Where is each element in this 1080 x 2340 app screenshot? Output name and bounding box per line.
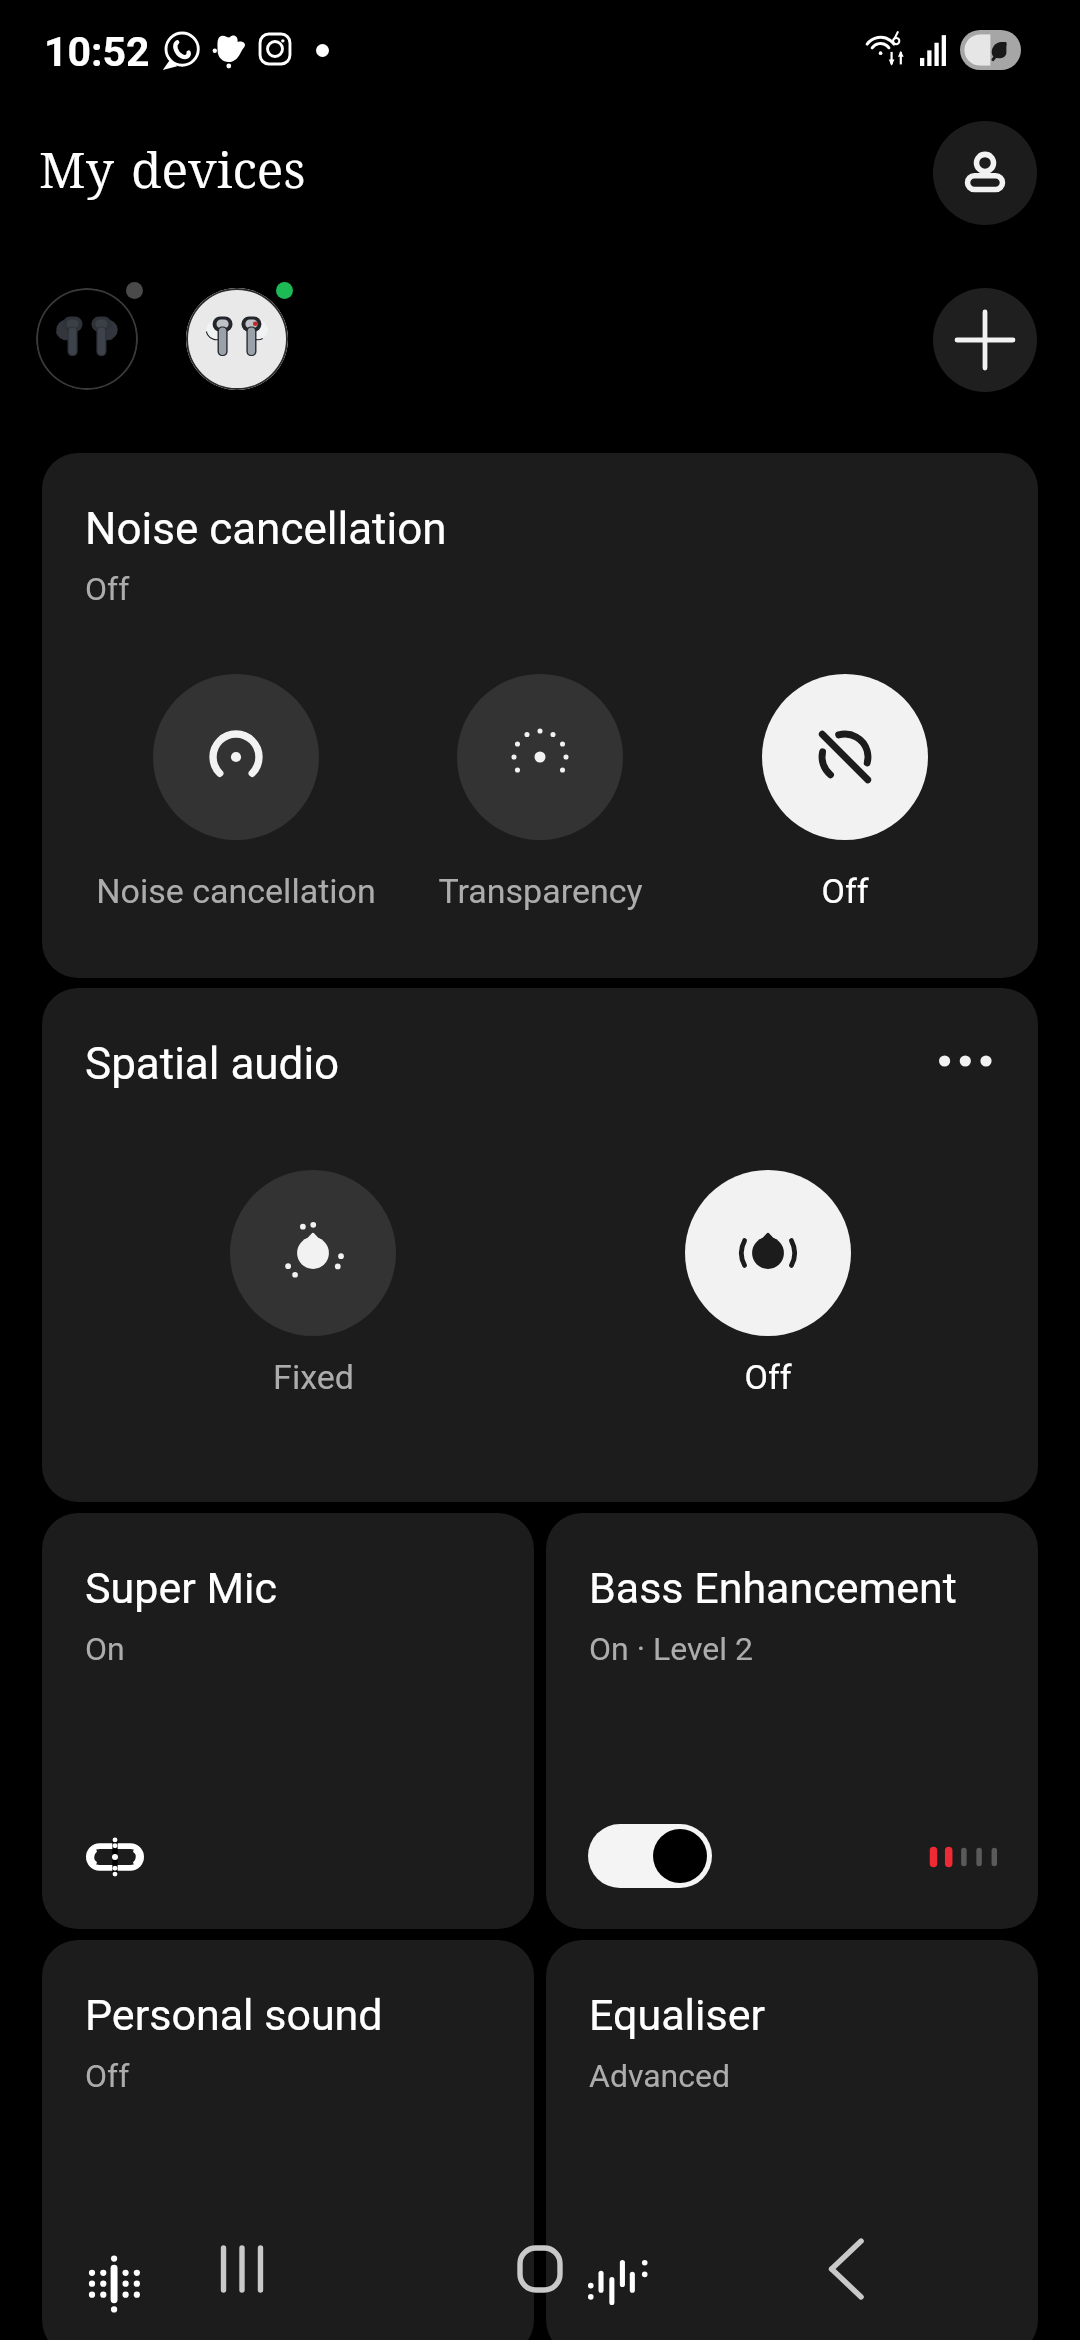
button[interactable]: Off	[685, 674, 1005, 911]
staticText: Bass Enhancement	[589, 1563, 957, 1613]
staticText: Noise cancellation	[96, 871, 376, 911]
staticText: On	[85, 1630, 125, 1668]
button[interactable]: Home	[480, 2209, 600, 2329]
button[interactable]: Connected earbuds	[186, 288, 288, 390]
button[interactable]: Transparency	[380, 674, 700, 911]
staticText: Personal sound	[85, 1990, 383, 2040]
staticText: Transparency	[438, 871, 643, 911]
button[interactable]: Account	[933, 121, 1037, 225]
button[interactable]: Off	[608, 1170, 928, 1397]
staticText: devices	[131, 130, 306, 202]
staticText: Off	[85, 2057, 130, 2095]
button[interactable]: Noise cancellation	[42, 453, 1038, 978]
button[interactable]: Recents	[182, 2209, 302, 2329]
button[interactable]: Fixed	[153, 1170, 473, 1397]
staticText: Equaliser	[589, 1990, 766, 2040]
button[interactable]: Equaliser	[546, 1940, 1038, 2340]
button[interactable]: Bass Enhancement	[546, 1513, 1038, 1929]
button[interactable]: Personal sound	[42, 1940, 534, 2340]
staticText: Spatial audio	[85, 1038, 340, 1090]
staticText: Off	[821, 871, 869, 911]
button[interactable]: Earbuds	[36, 288, 138, 390]
button[interactable]: Spatial audio	[42, 988, 1038, 1502]
button[interactable]: Bass enhancement toggle	[588, 1824, 712, 1888]
staticText: Fixed	[273, 1357, 354, 1397]
staticText: Super Mic	[85, 1563, 277, 1613]
staticText: 10:52	[44, 28, 150, 76]
button[interactable]: Back	[786, 2209, 906, 2329]
staticText: My	[39, 130, 114, 202]
button[interactable]: Super Mic	[42, 1513, 534, 1929]
button[interactable]: More options	[917, 1016, 1013, 1106]
staticText: Advanced	[589, 2057, 731, 2095]
staticText: On · Level 2	[589, 1630, 753, 1668]
button[interactable]: Noise cancellation	[76, 674, 396, 911]
staticText: Off	[744, 1357, 792, 1397]
button[interactable]: Add device	[933, 288, 1037, 392]
staticText: Off	[85, 570, 130, 608]
staticText: Noise cancellation	[85, 503, 447, 555]
